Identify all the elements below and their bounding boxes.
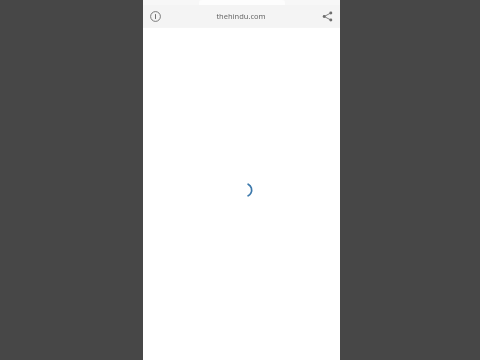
button[interactable]: thehindu.com [167, 5, 314, 27]
staticText: thehindu.com [216, 11, 266, 21]
button[interactable]: Share [314, 5, 340, 27]
button[interactable]: Site information [143, 5, 167, 27]
